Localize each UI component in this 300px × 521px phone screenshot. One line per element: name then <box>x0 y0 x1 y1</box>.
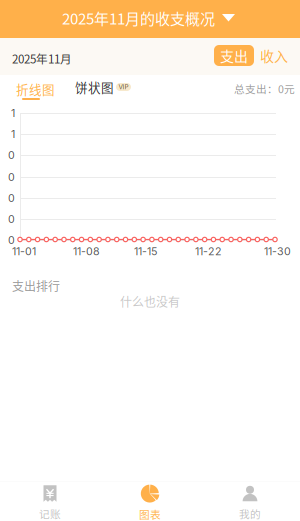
staticText: 我的 <box>239 506 261 521</box>
button[interactable]: 折线图 <box>16 80 56 104</box>
staticText: 2025年11月 <box>12 50 72 67</box>
staticText: 0 <box>8 170 15 183</box>
button[interactable]: 记账 <box>0 481 100 521</box>
staticText: 折线图 <box>16 80 55 98</box>
staticText: 11-01 <box>12 245 36 258</box>
staticText: 支出 <box>220 45 248 66</box>
staticText: 1 <box>11 106 15 119</box>
staticText: 图表 <box>139 506 161 521</box>
button[interactable]: 我的 <box>200 481 300 521</box>
button[interactable]: 图表 <box>100 481 200 521</box>
button[interactable]: 收入 <box>254 45 294 66</box>
staticText: 11-22 <box>195 245 222 258</box>
staticText: 收入 <box>260 45 288 66</box>
staticText: 饼状图 <box>75 78 114 96</box>
staticText: 11-15 <box>134 245 157 258</box>
staticText: 记账 <box>39 506 61 521</box>
staticText: 11-30 <box>264 245 291 258</box>
staticText: 什么也没有 <box>120 293 180 310</box>
button[interactable]: 2025年11月的收支概况 <box>0 0 300 38</box>
button[interactable]: 饼状图 <box>75 80 131 94</box>
staticText: 0 <box>8 148 15 161</box>
staticText: 2025年11月的收支概况 <box>62 7 215 29</box>
staticText: 11-08 <box>73 245 100 258</box>
staticText: VIP <box>118 83 128 91</box>
staticText: 支出排行 <box>12 277 60 294</box>
staticText: 0 <box>8 191 15 204</box>
staticText: 总支出：0元 <box>234 81 295 96</box>
staticText: 0 <box>8 233 15 246</box>
staticText: 1 <box>11 127 15 140</box>
button[interactable]: 支出 <box>214 45 254 66</box>
staticText: 0 <box>8 212 15 225</box>
